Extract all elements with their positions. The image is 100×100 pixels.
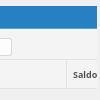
staticText: Saldo	[73, 68, 98, 80]
button[interactable]: Input field	[0, 38, 12, 56]
button[interactable]: Header	[0, 6, 97, 29]
button[interactable]: Saldo	[67, 60, 97, 88]
